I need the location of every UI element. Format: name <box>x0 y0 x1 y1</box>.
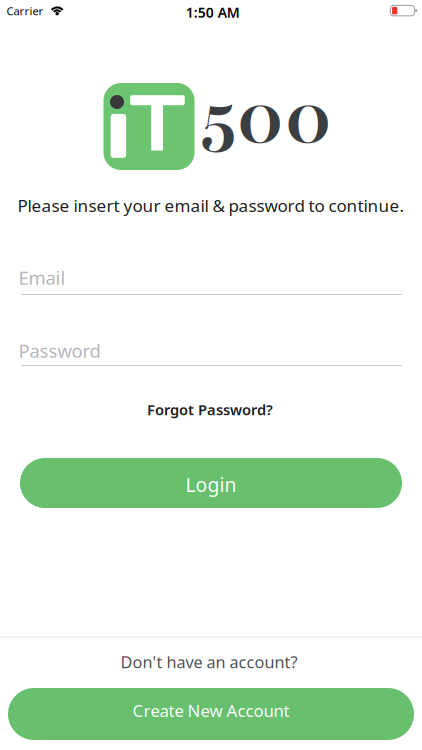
button[interactable]: Login <box>20 458 402 508</box>
staticText: Forgot Password? <box>147 399 273 419</box>
staticText: Carrier <box>6 3 43 18</box>
staticText: 1:50 AM <box>186 3 240 22</box>
button[interactable]: Password <box>0 320 422 380</box>
staticText: Please insert your email & password to c… <box>17 194 404 217</box>
staticText: Email <box>18 265 65 290</box>
button[interactable]: Create New Account <box>8 688 414 740</box>
staticText: Password <box>18 338 100 363</box>
button[interactable]: Email <box>0 247 422 307</box>
staticText: Login <box>185 471 236 498</box>
staticText: Create New Account <box>132 699 289 722</box>
button[interactable]: Forgot Password? <box>147 399 273 419</box>
staticText: 500 <box>200 67 332 169</box>
staticText: Don't have an account? <box>120 651 297 673</box>
